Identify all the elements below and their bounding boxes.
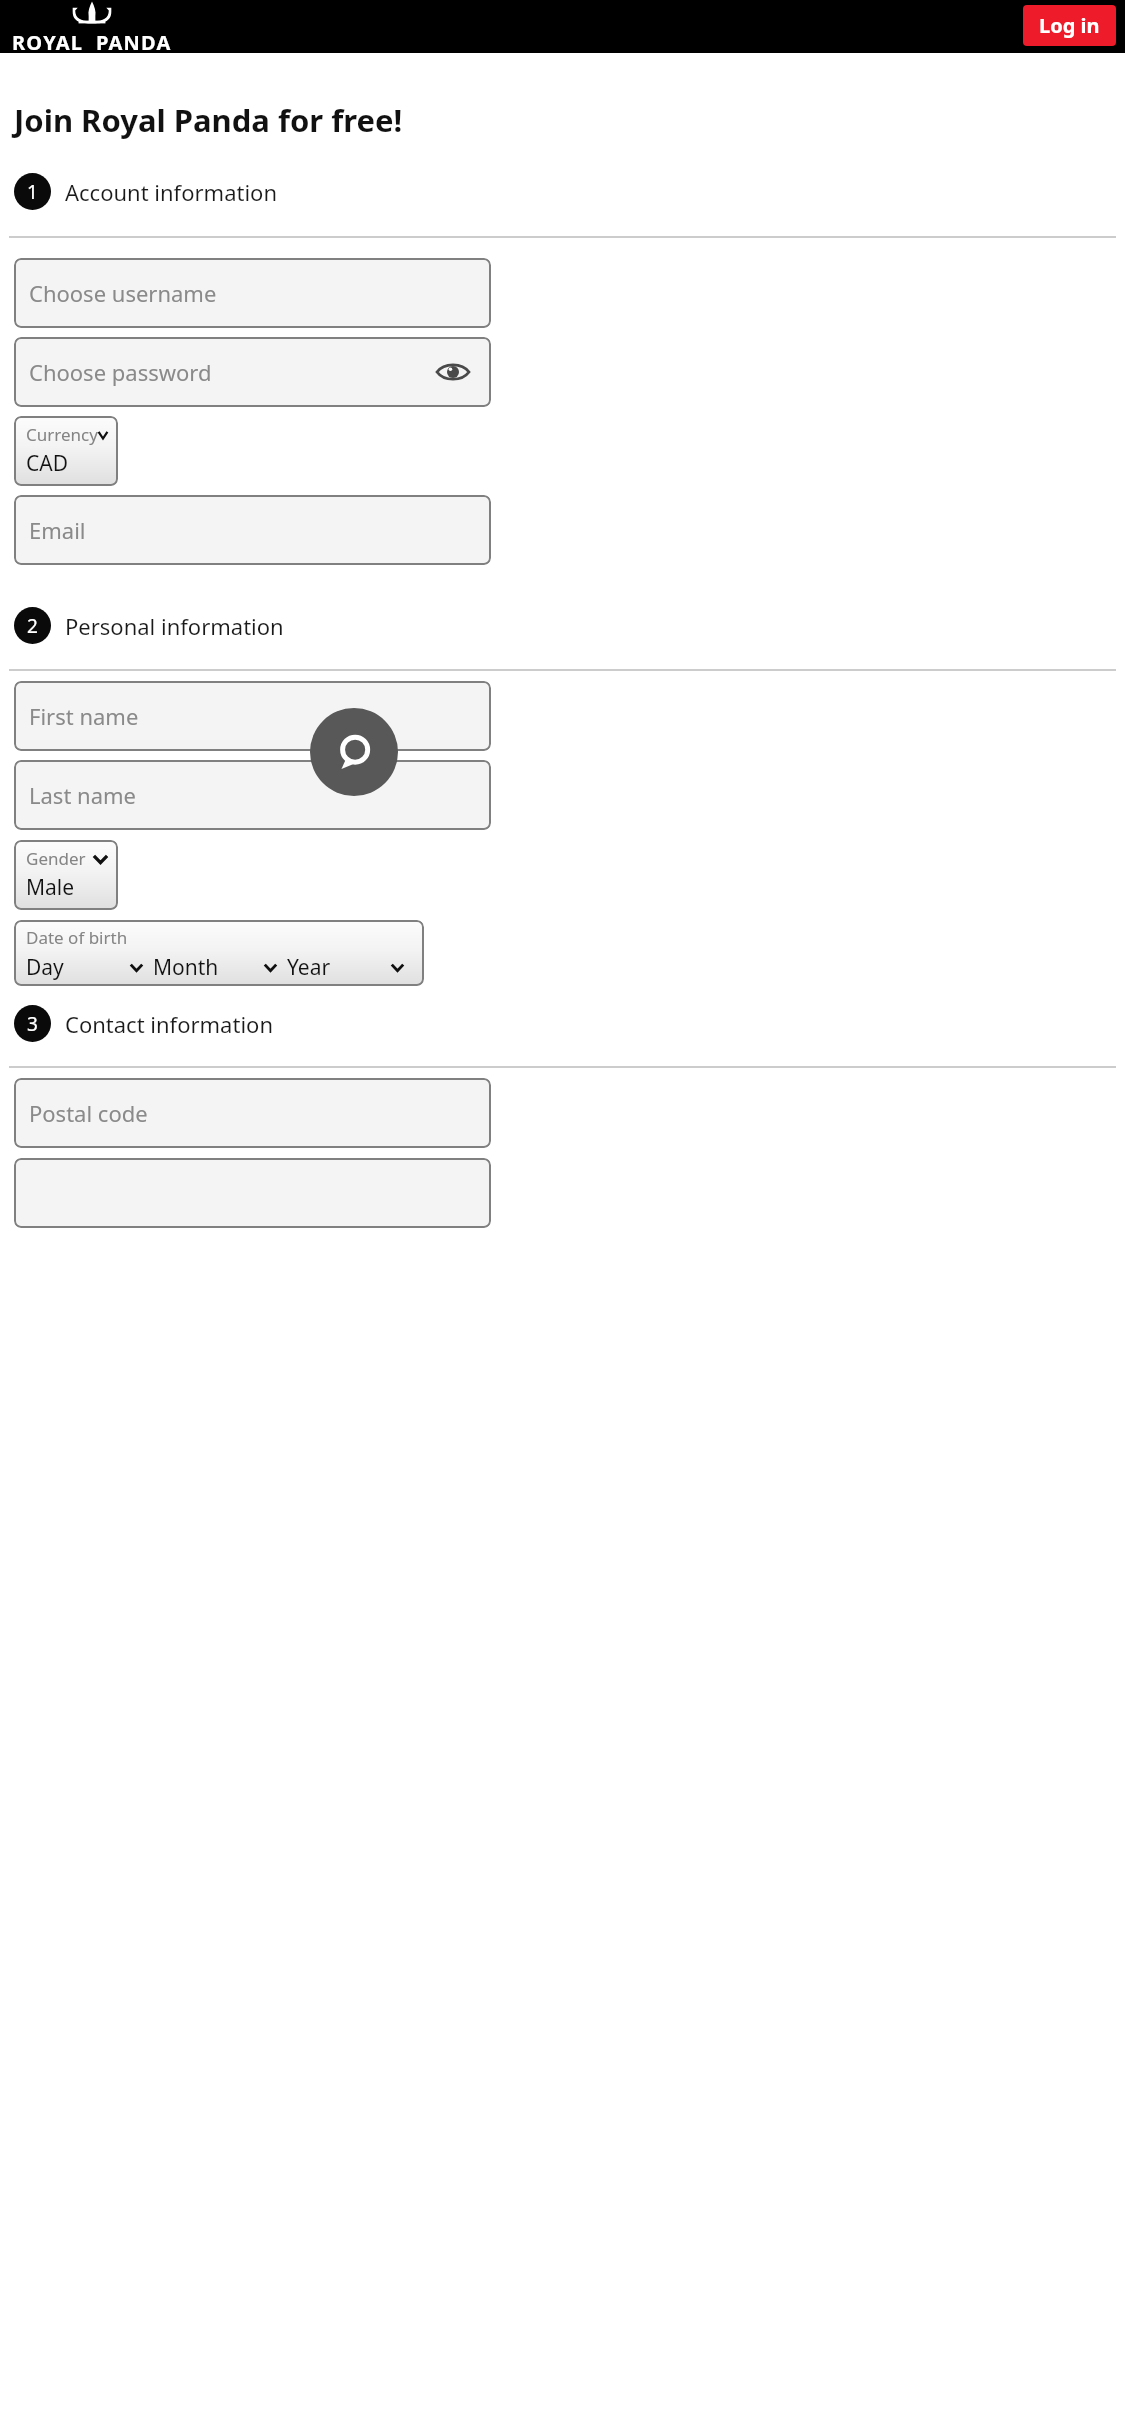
staticText: Gender (26, 847, 86, 870)
staticText: Date of birth (26, 926, 128, 949)
staticText: 3 (27, 1011, 38, 1037)
button[interactable]: Postal code (14, 1078, 491, 1148)
staticText: Currency (26, 423, 98, 446)
button[interactable]: Last name (14, 760, 491, 830)
staticText: Email (29, 515, 86, 545)
button[interactable]: First name (14, 681, 491, 751)
button[interactable]: Log in (1023, 5, 1116, 46)
staticText: Account information (65, 177, 278, 207)
staticText: First name (29, 701, 139, 731)
staticText: ROYAL PANDA (12, 29, 172, 53)
button[interactable]: 2 (14, 607, 1125, 644)
staticText: Log in (1039, 12, 1100, 39)
button[interactable]: 3 (14, 1005, 1125, 1042)
staticText: Join Royal Panda for free! (14, 99, 403, 141)
button[interactable]: Day (26, 953, 153, 982)
staticText: Choose password (29, 357, 212, 387)
button[interactable]: Choose username (14, 258, 491, 328)
staticText: Day (26, 953, 64, 982)
button[interactable]: Chat (310, 708, 398, 796)
staticText: Contact information (65, 1009, 273, 1039)
staticText: CAD (26, 449, 69, 478)
staticText: Postal code (29, 1098, 148, 1128)
staticText: 1 (27, 179, 38, 205)
staticText: Choose username (29, 278, 217, 308)
button[interactable]: Email (14, 495, 491, 565)
staticText: Male (26, 873, 75, 902)
button[interactable]: Year (287, 953, 414, 982)
button[interactable]: Currency (14, 416, 118, 486)
button[interactable] (14, 1158, 491, 1228)
button[interactable]: Gender (14, 840, 118, 910)
staticText: Last name (29, 780, 136, 810)
button[interactable]: Choose password (14, 337, 491, 407)
button[interactable]: Show password (435, 354, 471, 390)
staticText: Year (287, 953, 331, 982)
staticText: Personal information (65, 611, 284, 641)
button[interactable]: 1 (14, 173, 1125, 210)
button[interactable]: Date of birth (14, 920, 424, 986)
button[interactable]: Month (153, 953, 287, 982)
staticText: 2 (27, 613, 38, 639)
staticText: Month (153, 953, 219, 982)
